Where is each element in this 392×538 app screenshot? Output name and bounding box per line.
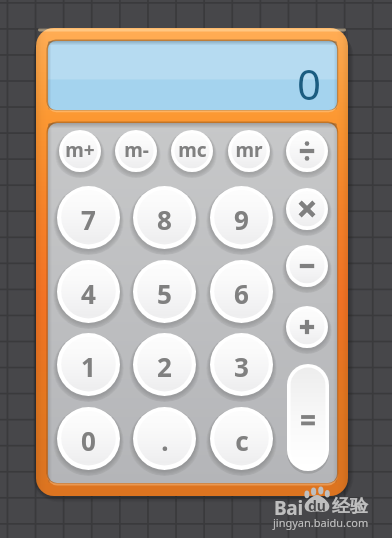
button[interactable]: Subtract (280, 239, 334, 293)
staticText: mc (178, 137, 207, 163)
button[interactable]: 4 (51, 254, 126, 329)
button[interactable]: c (204, 401, 279, 476)
button[interactable]: . (127, 401, 202, 476)
staticText: 3 (234, 349, 249, 384)
staticText: 7 (81, 202, 96, 237)
staticText: m+ (65, 137, 95, 163)
staticText: jingyan.baidu.com (273, 515, 369, 530)
button[interactable]: m+ (53, 124, 107, 178)
button[interactable]: mc (165, 124, 219, 178)
button[interactable]: 9 (204, 180, 279, 255)
staticText: 2 (157, 349, 172, 384)
staticText: 0 (81, 423, 96, 458)
button[interactable]: 7 (51, 180, 126, 255)
staticText: 4 (81, 276, 96, 311)
staticText: . (161, 423, 169, 458)
staticText: 0 (297, 55, 322, 112)
button[interactable]: 3 (204, 327, 279, 402)
staticText: 6 (234, 276, 249, 311)
button[interactable]: 0 (51, 401, 126, 476)
button[interactable]: Add (280, 300, 334, 354)
button[interactable]: 6 (204, 254, 279, 329)
staticText: 1 (81, 349, 96, 384)
button[interactable]: 2 (127, 327, 202, 402)
staticText: 经验 (332, 495, 368, 518)
staticText: 9 (234, 202, 249, 237)
staticText: du (308, 496, 326, 515)
staticText: Bai (274, 495, 303, 521)
staticText: m- (124, 137, 149, 163)
button[interactable]: Equals (281, 358, 335, 477)
staticText: c (235, 423, 249, 458)
button[interactable]: Multiply (280, 182, 334, 236)
button[interactable]: mr (222, 124, 276, 178)
button[interactable]: Divide (280, 124, 334, 178)
staticText: mr (235, 137, 263, 163)
button[interactable]: 5 (127, 254, 202, 329)
button[interactable]: 8 (127, 180, 202, 255)
button[interactable]: 1 (51, 327, 126, 402)
staticText: 8 (157, 202, 172, 237)
button[interactable]: m- (109, 124, 163, 178)
staticText: 5 (157, 276, 172, 311)
